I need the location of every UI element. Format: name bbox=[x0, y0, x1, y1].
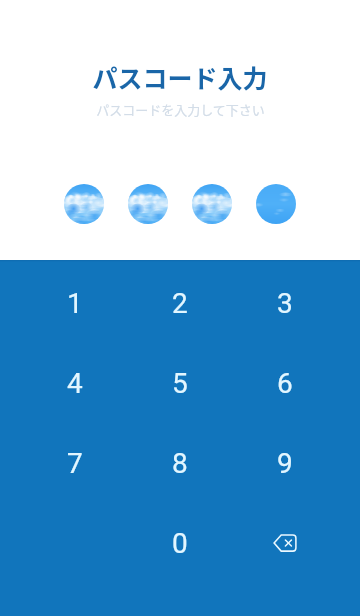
button[interactable]: 6 bbox=[232, 343, 337, 423]
staticText: 9 bbox=[277, 447, 293, 480]
button[interactable]: 3 bbox=[232, 263, 337, 343]
staticText: 7 bbox=[67, 447, 83, 480]
staticText: 8 bbox=[172, 447, 188, 480]
button[interactable]: 9 bbox=[232, 423, 337, 503]
other: Backspace bbox=[273, 531, 297, 555]
staticText: 3 bbox=[277, 287, 293, 320]
staticText: パスコードを入力して下さい bbox=[96, 100, 265, 119]
button[interactable]: 0 bbox=[127, 503, 232, 583]
staticText: 0 bbox=[172, 527, 188, 560]
button[interactable]: 2 bbox=[127, 263, 232, 343]
button[interactable]: 4 bbox=[23, 343, 127, 423]
button[interactable]: 8 bbox=[127, 423, 232, 503]
staticText: 5 bbox=[172, 367, 188, 400]
button[interactable]: 1 bbox=[23, 263, 127, 343]
button[interactable]: 5 bbox=[127, 343, 232, 423]
staticText: 1 bbox=[67, 287, 83, 320]
button[interactable]: 7 bbox=[23, 423, 127, 503]
staticText: パスコード入力 bbox=[92, 59, 268, 95]
staticText: 6 bbox=[277, 367, 293, 400]
staticText: 4 bbox=[67, 367, 83, 400]
staticText: 2 bbox=[172, 287, 188, 320]
button[interactable]: Backspace bbox=[232, 503, 337, 583]
